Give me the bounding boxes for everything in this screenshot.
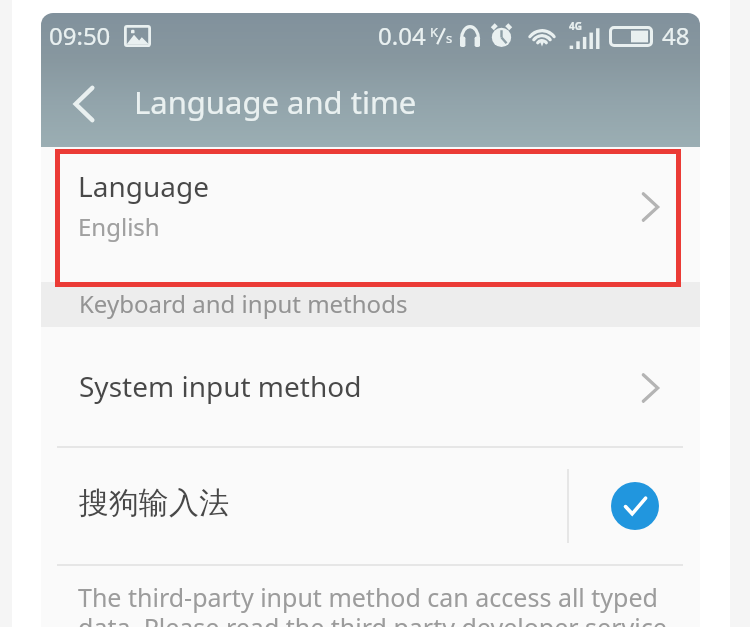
staticText: Keyboard and input methods (79, 287, 408, 320)
staticText: Language and time (134, 81, 417, 123)
staticText: The third-party input method can access … (78, 580, 673, 627)
button[interactable]: Enabled (611, 482, 659, 530)
staticText: 0.04 (378, 19, 426, 52)
staticText: 48 (662, 19, 690, 52)
staticText: Language (78, 167, 209, 205)
button[interactable]: Back (41, 59, 114, 147)
staticText: 4G (569, 19, 582, 33)
button[interactable]: 搜狗输入法 (41, 448, 700, 564)
staticText: English (78, 210, 160, 243)
staticText: 09:50 (49, 19, 111, 52)
button[interactable]: System input method (41, 327, 700, 446)
staticText: System input method (79, 367, 362, 405)
staticText: K (430, 23, 439, 41)
staticText: s (446, 29, 453, 47)
staticText: 搜狗输入法 (79, 484, 229, 522)
button[interactable]: Language (41, 147, 700, 282)
